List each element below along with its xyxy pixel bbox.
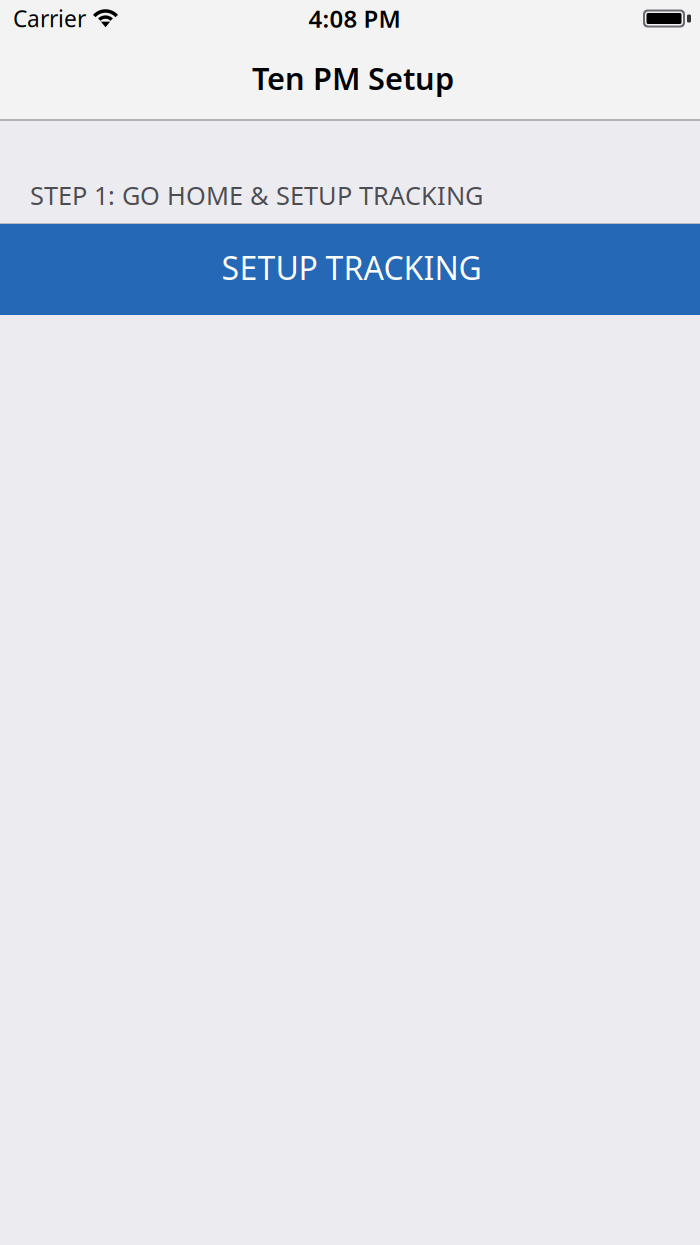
button[interactable]: SETUP TRACKING bbox=[0, 224, 700, 315]
staticText: Carrier bbox=[13, 3, 86, 33]
staticText: Ten PM Setup bbox=[252, 58, 454, 98]
staticText: SETUP TRACKING bbox=[221, 246, 481, 289]
staticText: STEP 1: GO HOME & SETUP TRACKING bbox=[30, 178, 483, 212]
staticText: 4:08 PM bbox=[308, 3, 400, 34]
